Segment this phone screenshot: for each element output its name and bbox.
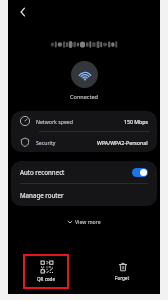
staticText: Security — [36, 139, 56, 146]
staticText: Auto reconnect — [20, 168, 65, 176]
staticText: WPA/WPA2-Personal — [97, 139, 148, 146]
staticText: Forget — [115, 275, 130, 281]
button[interactable]: Manage router — [11, 184, 157, 206]
button[interactable]: Security — [11, 132, 157, 152]
staticText: 150 Mbps — [124, 118, 148, 125]
staticText: Manage router — [20, 191, 64, 199]
button[interactable]: View more — [62, 216, 106, 227]
staticText: Network speed — [36, 118, 73, 125]
other: QR code — [41, 261, 53, 273]
button[interactable]: Forget network — [107, 259, 138, 284]
button[interactable]: QR code — [23, 254, 69, 289]
button[interactable]: Auto reconnect — [11, 161, 157, 183]
other: Forget network — [118, 262, 128, 272]
staticText: QR code — [37, 276, 56, 282]
button[interactable]: Network speed — [11, 111, 157, 131]
staticText: Connected — [8, 93, 160, 100]
staticText: View more — [75, 218, 101, 225]
button[interactable]: Back — [11, 0, 35, 24]
